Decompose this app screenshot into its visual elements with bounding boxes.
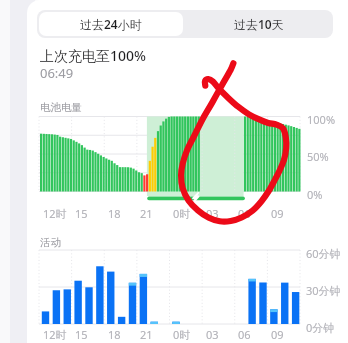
staticText: 过去10天 [234, 16, 284, 32]
staticText: 12时 [43, 206, 67, 221]
staticText: 21 [140, 327, 153, 342]
other: Hand drawn annotation [0, 0, 348, 343]
staticText: 06 [238, 206, 251, 221]
staticText: 21 [140, 206, 153, 221]
staticText: 0时 [173, 327, 191, 342]
staticText: 上次充电至100% [40, 46, 146, 65]
staticText: 18 [108, 327, 121, 342]
staticText: 06 [238, 327, 251, 342]
staticText: 18 [108, 206, 121, 221]
staticText: 06:49 [40, 64, 74, 82]
staticText: 09 [271, 327, 284, 342]
staticText: 电池电量 [40, 101, 82, 114]
button[interactable]: 过去24小时 [39, 12, 183, 36]
staticText: 活动 [40, 236, 61, 249]
button[interactable]: 过去10天 [185, 10, 333, 38]
staticText: 0时 [173, 206, 191, 221]
staticText: 12时 [43, 327, 67, 342]
staticText: 15 [75, 327, 88, 342]
staticText: 50% [307, 149, 329, 164]
staticText: 过去24小时 [80, 16, 142, 32]
staticText: 60分钟 [306, 246, 341, 261]
staticText: 09 [271, 206, 284, 221]
staticText: 0分钟 [306, 320, 335, 335]
staticText: 03 [206, 327, 219, 342]
staticText: 100% [307, 112, 336, 127]
staticText: 30分钟 [306, 283, 341, 298]
staticText: 0% [307, 187, 323, 202]
staticText: 03 [206, 206, 219, 221]
staticText: 15 [75, 206, 88, 221]
